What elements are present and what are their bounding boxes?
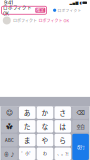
staticText: ら <box>59 135 66 145</box>
button[interactable]: あ <box>19 106 35 119</box>
staticText: は <box>59 121 66 131</box>
button[interactable]: か <box>37 106 53 119</box>
button[interactable]: ✿ <box>1 120 18 133</box>
button[interactable]: な <box>37 120 53 133</box>
staticText: さ <box>59 108 66 117</box>
button[interactable]: 空白 <box>72 120 89 133</box>
button[interactable]: わ <box>37 147 53 160</box>
staticText: ゛小゜ <box>21 151 33 157</box>
staticText: 9:41 <box>4 0 13 6</box>
staticText: ロボフィクト <box>57 7 81 13</box>
button[interactable]: ロボフィクト <box>0 15 90 26</box>
button[interactable]: 、。?! <box>54 147 71 160</box>
staticText: 改行 <box>77 144 85 150</box>
button[interactable]: ⌫ <box>72 106 89 119</box>
button[interactable]: ⊕ ♪ <box>1 147 18 160</box>
staticText: ABC <box>5 137 14 143</box>
button[interactable]: ら <box>54 134 71 146</box>
button[interactable]: は <box>54 120 71 133</box>
button[interactable]: た <box>19 120 35 133</box>
staticText: ロボフィクト OK <box>3 4 32 17</box>
staticText: あ <box>24 108 31 117</box>
button[interactable]: ☺ <box>1 106 18 119</box>
staticText: ☺ <box>6 109 13 117</box>
staticText: か <box>41 108 48 117</box>
staticText: な <box>41 121 48 131</box>
button[interactable]: ま <box>19 134 35 146</box>
button[interactable]: 改行 <box>72 134 89 160</box>
button[interactable]: ロボフィクト OK <box>1 6 46 14</box>
button[interactable]: ABC <box>1 134 18 146</box>
staticText: ロボフィクト <box>13 18 37 23</box>
staticText: 空白 <box>77 123 85 129</box>
button[interactable]: や <box>37 134 53 146</box>
staticText: た <box>24 121 31 131</box>
staticText: ✿ <box>6 121 13 131</box>
staticText: 、。?! <box>57 151 68 157</box>
staticText: ⊕ ♪ <box>4 150 15 157</box>
staticText: 確定 <box>36 7 44 13</box>
staticText: ロボフィクト OK <box>38 18 69 23</box>
button[interactable]: ゛小゜ <box>19 147 35 160</box>
staticText: ⌫ <box>77 109 85 116</box>
staticText: ま <box>24 135 31 145</box>
staticText: や <box>41 135 48 145</box>
staticText: ▂▄▆ <box>69 1 78 5</box>
staticText: ◖ <box>78 0 81 5</box>
button[interactable]: さ <box>54 106 71 119</box>
staticText: わ <box>43 151 47 157</box>
